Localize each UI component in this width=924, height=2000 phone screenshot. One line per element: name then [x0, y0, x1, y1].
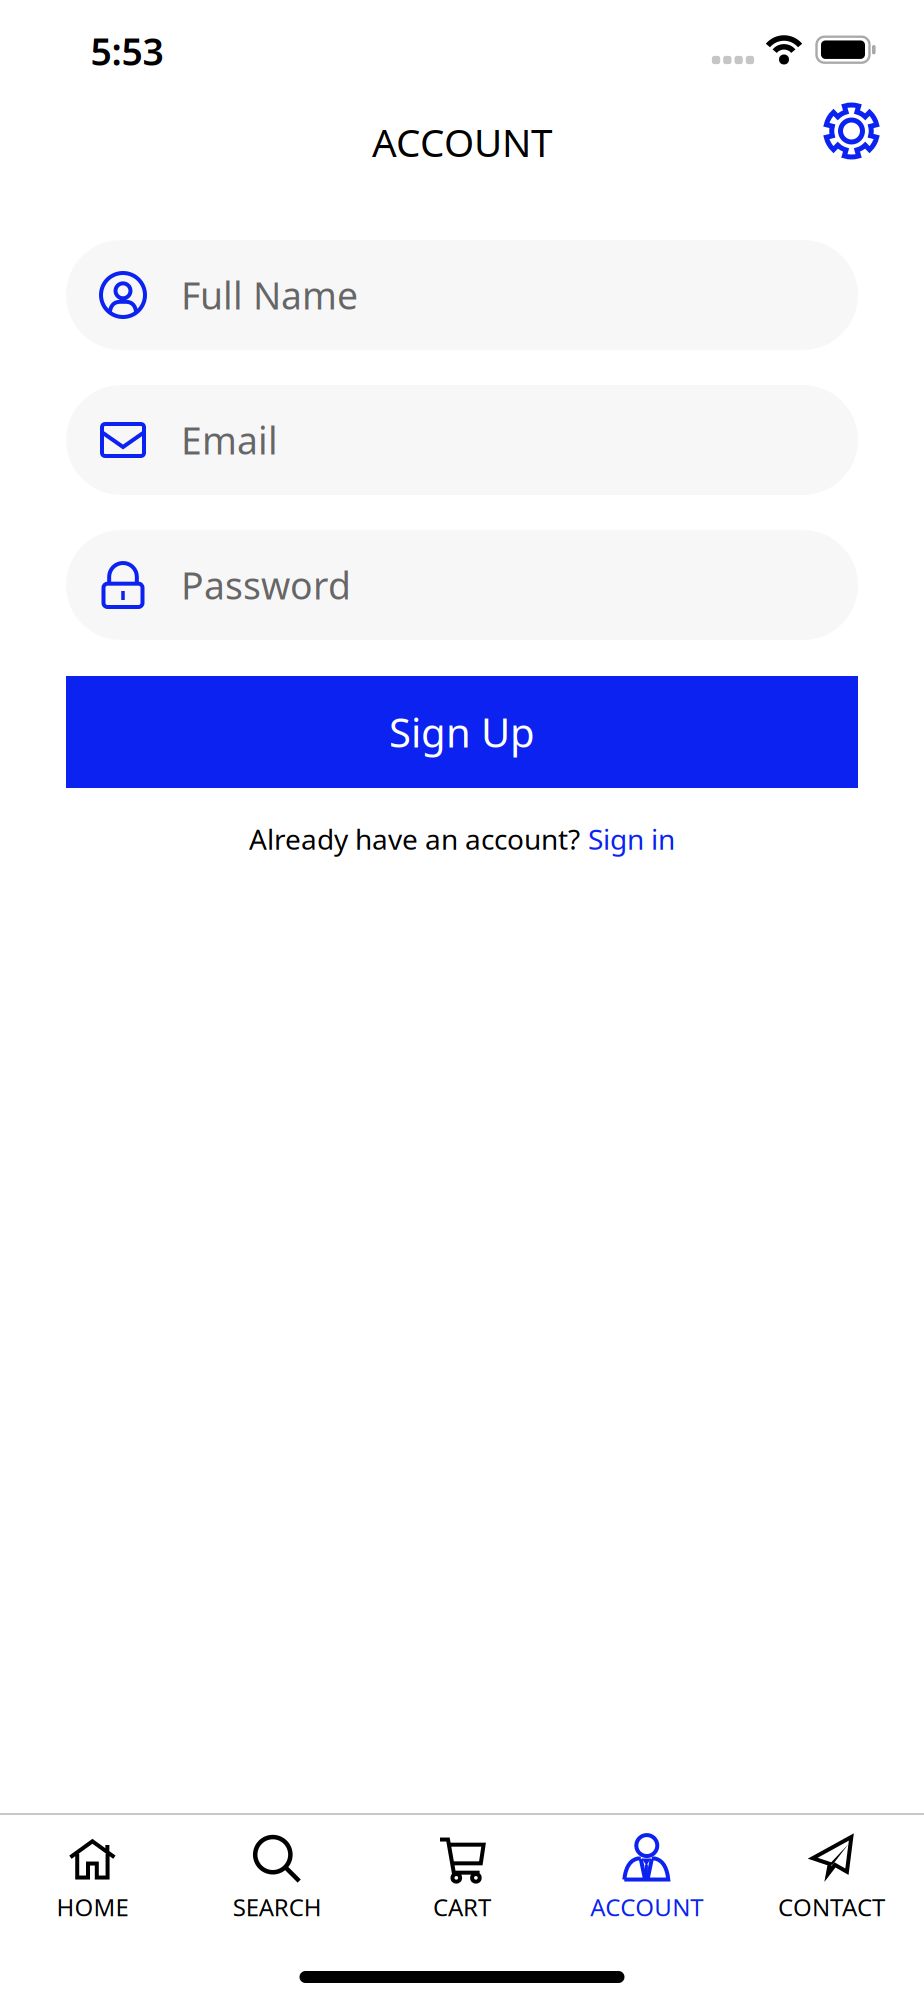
button[interactable]: ACCOUNT [557, 1827, 737, 1931]
button[interactable]: Full Name [66, 240, 858, 350]
staticText: Password [181, 560, 351, 610]
button[interactable]: Password [66, 530, 858, 640]
staticText: HOME [56, 1891, 128, 1923]
staticText: ACCOUNT [590, 1891, 703, 1923]
staticText: CART [433, 1891, 491, 1923]
staticText: CONTACT [778, 1891, 885, 1923]
staticText: Full Name [181, 270, 358, 320]
staticText: Sign in [588, 820, 675, 858]
staticText: SEARCH [233, 1891, 322, 1923]
staticText: Email [181, 415, 278, 465]
button[interactable]: CART [372, 1827, 552, 1931]
staticText: ACCOUNT [372, 116, 552, 168]
staticText: Sign Up [389, 705, 535, 758]
button[interactable]: Settings [821, 101, 881, 161]
staticText: 5:53 [90, 26, 163, 76]
button[interactable]: Email [66, 385, 858, 495]
button[interactable]: SEARCH [187, 1827, 367, 1931]
staticText: Already have an account? [249, 820, 580, 858]
button[interactable]: Sign Up [66, 676, 858, 788]
button[interactable]: HOME [2, 1827, 182, 1931]
button[interactable]: CONTACT [742, 1827, 922, 1931]
button[interactable]: Sign in [588, 820, 675, 858]
